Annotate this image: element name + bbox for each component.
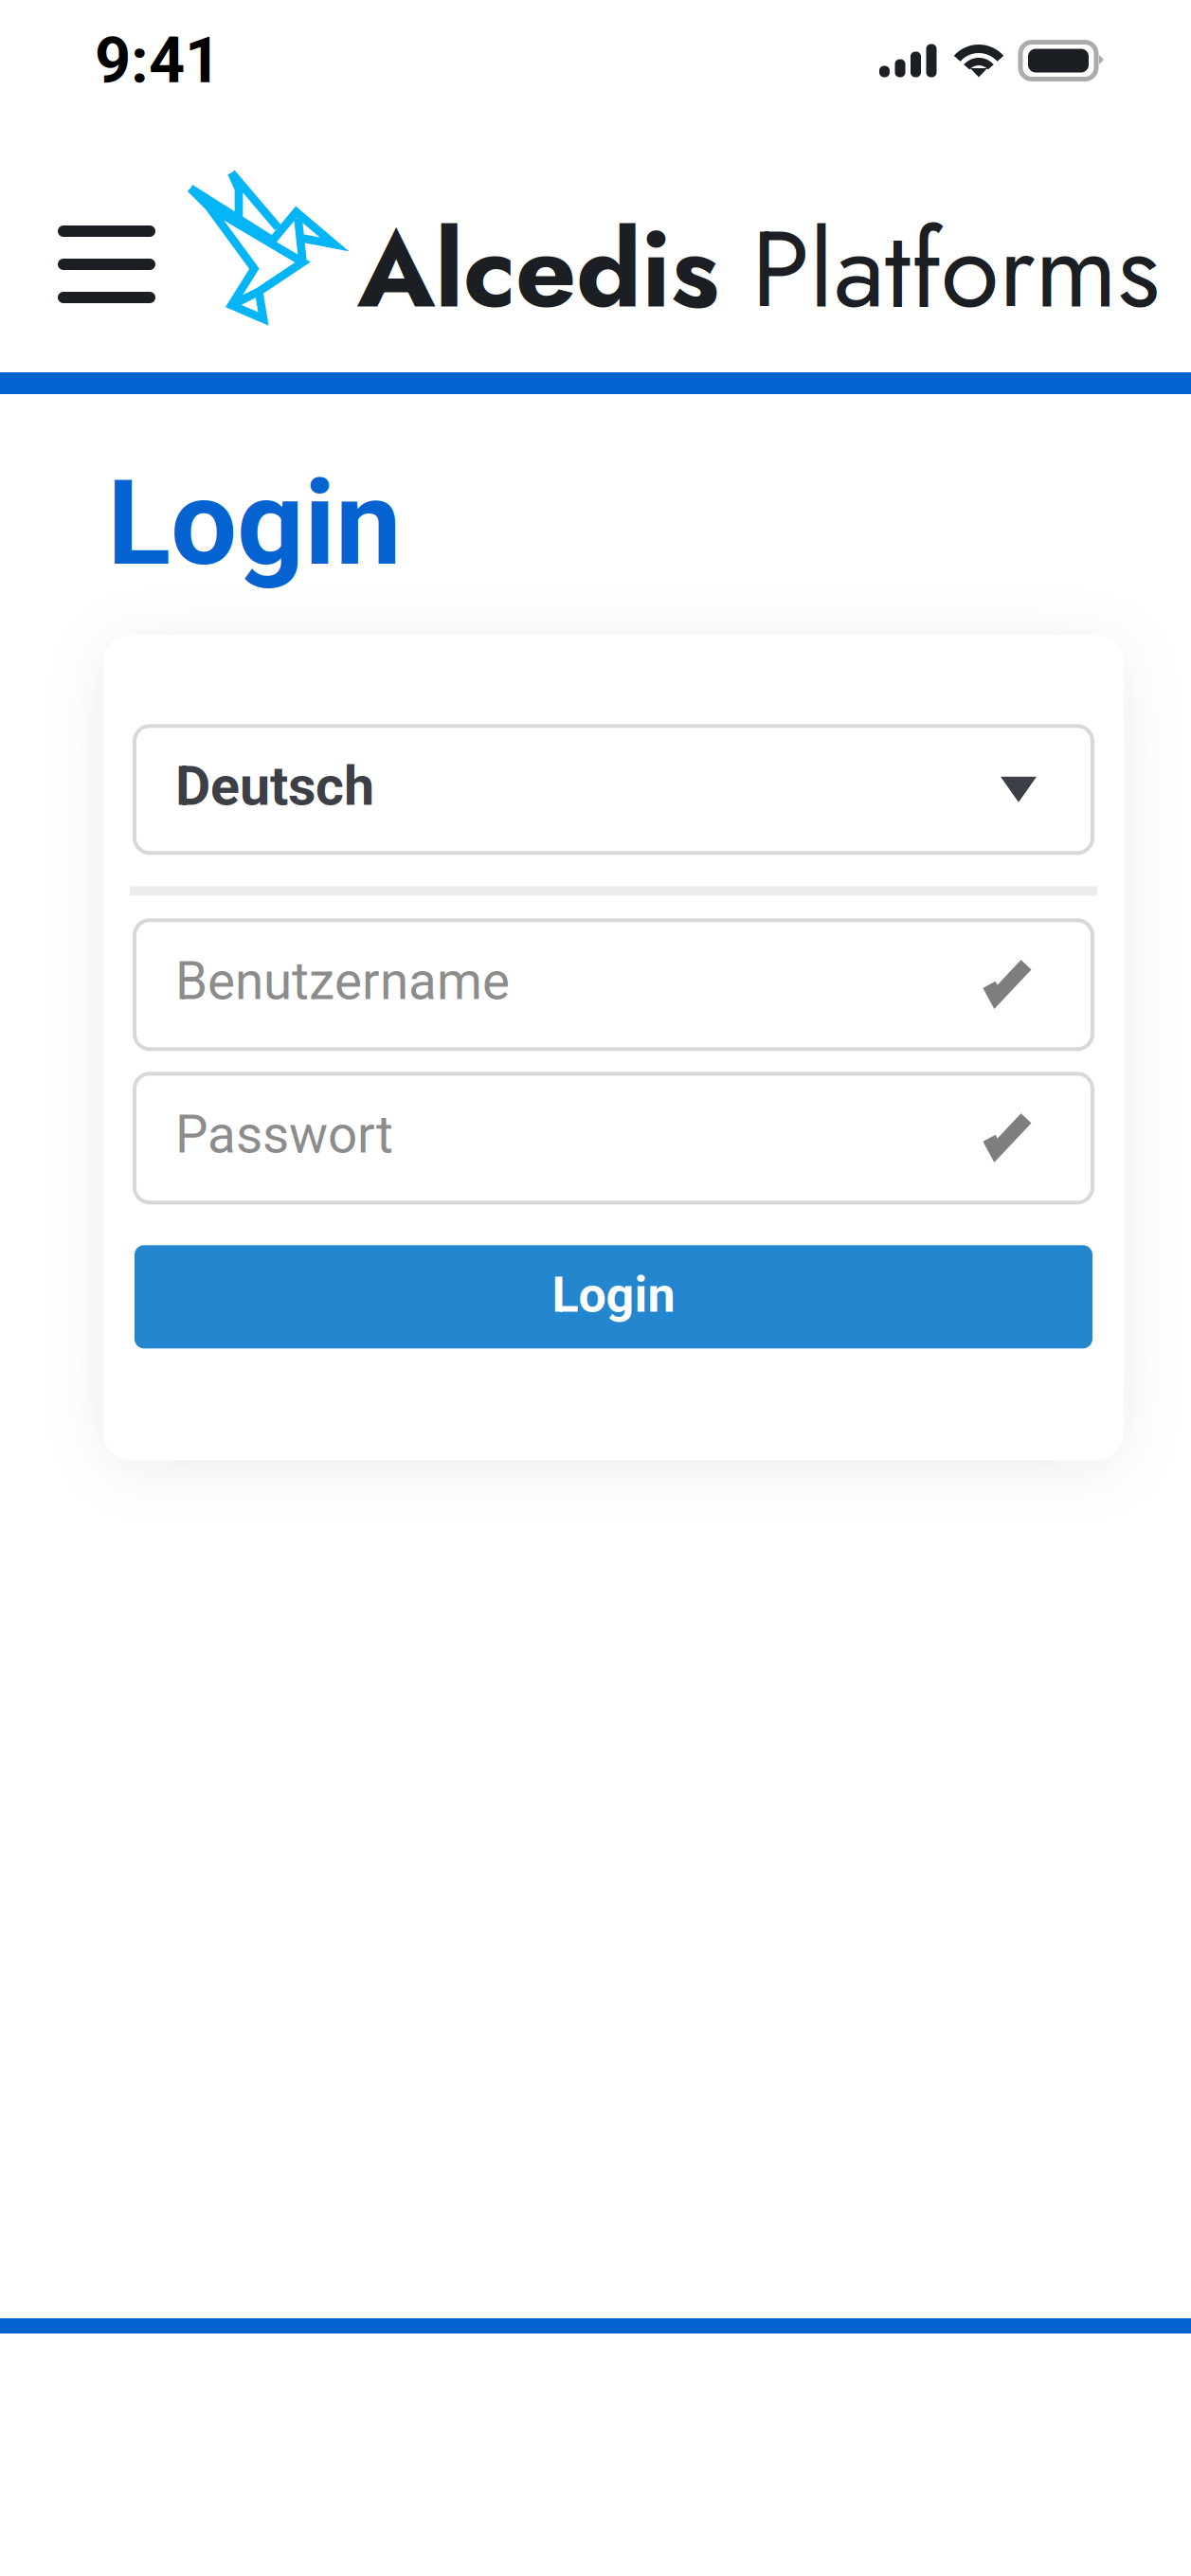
button[interactable]: Sprache: Deutsch xyxy=(135,726,1092,853)
staticText: Login xyxy=(552,1266,675,1324)
staticText: 9:41 xyxy=(95,24,221,98)
staticText: Passwort xyxy=(175,1104,393,1165)
button[interactable]: Login xyxy=(135,1245,1092,1348)
staticText: Benutzername xyxy=(175,951,510,1012)
staticText: Alcedis xyxy=(357,193,719,346)
staticText: Deutsch xyxy=(175,754,374,818)
staticText: Login xyxy=(107,455,402,592)
button[interactable]: Menu xyxy=(0,190,188,303)
staticText: Platforms xyxy=(719,193,1160,346)
